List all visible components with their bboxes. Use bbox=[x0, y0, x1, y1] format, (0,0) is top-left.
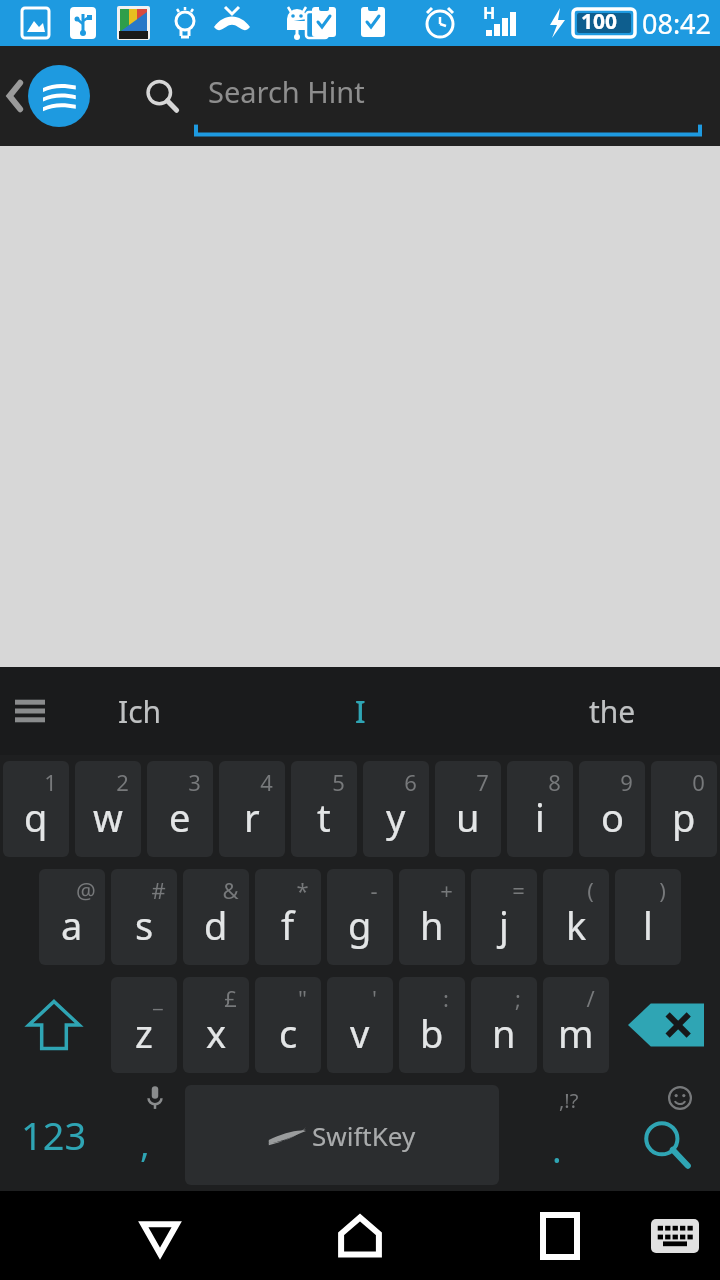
button[interactable]: Backspace bbox=[612, 971, 720, 1079]
button[interactable]: ) bbox=[615, 869, 681, 965]
staticText: a bbox=[61, 899, 83, 951]
staticText: I bbox=[355, 691, 366, 732]
staticText: SwiftKey bbox=[312, 1118, 416, 1153]
staticText: - bbox=[370, 875, 378, 905]
button[interactable]: Ich bbox=[40, 667, 240, 755]
staticText: 5 bbox=[332, 767, 345, 797]
button[interactable]: / bbox=[543, 977, 609, 1073]
button[interactable]: 2 bbox=[75, 761, 141, 857]
staticText: y bbox=[386, 791, 406, 843]
button[interactable]: Shift bbox=[0, 971, 108, 1079]
button[interactable]: : bbox=[399, 977, 465, 1073]
staticText: h bbox=[420, 899, 444, 951]
staticText: j bbox=[499, 899, 509, 951]
staticText: q bbox=[24, 791, 48, 843]
staticText: 123 bbox=[21, 1109, 87, 1161]
staticText: ) bbox=[659, 875, 666, 905]
staticText: u bbox=[456, 791, 480, 843]
button[interactable]: + bbox=[399, 869, 465, 965]
button[interactable]: 5 bbox=[291, 761, 357, 857]
staticText: v bbox=[350, 1007, 370, 1059]
button[interactable]: 7 bbox=[435, 761, 501, 857]
button[interactable]: @ bbox=[39, 869, 105, 965]
button[interactable]: 8 bbox=[507, 761, 573, 857]
staticText: b bbox=[420, 1007, 444, 1059]
button[interactable]: # bbox=[111, 869, 177, 965]
button[interactable]: ' bbox=[327, 977, 393, 1073]
staticText: e bbox=[169, 791, 191, 843]
staticText: & bbox=[222, 875, 239, 905]
staticText: 100 bbox=[581, 7, 618, 36]
staticText: 8 bbox=[548, 767, 561, 797]
button[interactable]: & bbox=[183, 869, 249, 965]
button[interactable]: £ bbox=[183, 977, 249, 1073]
staticText: 2 bbox=[116, 767, 129, 797]
staticText: Search Hint bbox=[208, 72, 365, 111]
button[interactable]: Search bbox=[612, 1079, 720, 1191]
staticText: 4 bbox=[260, 767, 273, 797]
staticText: s bbox=[135, 899, 154, 951]
staticText: ,!? bbox=[559, 1087, 579, 1114]
staticText: 1 bbox=[44, 767, 57, 797]
staticText: d bbox=[204, 899, 228, 951]
staticText: 0 bbox=[692, 767, 705, 797]
staticText: x bbox=[206, 1007, 227, 1059]
staticText: the bbox=[589, 691, 636, 732]
staticText: 7 bbox=[476, 767, 489, 797]
button[interactable]: 1 bbox=[3, 761, 69, 857]
button[interactable]: 9 bbox=[579, 761, 645, 857]
button[interactable]: 0 bbox=[651, 761, 717, 857]
button[interactable]: Switch keyboard bbox=[630, 1191, 720, 1280]
staticText: p bbox=[672, 791, 696, 843]
staticText: Ich bbox=[118, 691, 162, 732]
button[interactable]: = bbox=[471, 869, 537, 965]
button[interactable]: I bbox=[260, 667, 460, 755]
button[interactable]: * bbox=[255, 869, 321, 965]
button[interactable]: _ bbox=[111, 977, 177, 1073]
button[interactable]: 3 bbox=[147, 761, 213, 857]
button[interactable]: the bbox=[512, 667, 712, 755]
staticText: m bbox=[558, 1007, 594, 1059]
staticText: : bbox=[443, 983, 449, 1013]
staticText: i bbox=[535, 791, 545, 843]
button[interactable]: 6 bbox=[363, 761, 429, 857]
staticText: 9 bbox=[620, 767, 633, 797]
staticText: o bbox=[601, 791, 624, 843]
button[interactable]: 4 bbox=[219, 761, 285, 857]
button[interactable]: Back bbox=[110, 1191, 210, 1280]
staticText: f bbox=[281, 899, 295, 951]
staticText: # bbox=[151, 875, 166, 905]
staticText: * bbox=[296, 875, 309, 905]
staticText: k bbox=[566, 899, 587, 951]
button[interactable]: ( bbox=[543, 869, 609, 965]
button[interactable]: Recent apps bbox=[510, 1191, 610, 1280]
staticText: g bbox=[348, 899, 372, 951]
button[interactable]: ; bbox=[471, 977, 537, 1073]
button[interactable]: 123 bbox=[0, 1079, 108, 1191]
button[interactable]: Menu bbox=[0, 667, 60, 755]
button[interactable]: Period and symbols bbox=[502, 1079, 612, 1191]
staticText: _ bbox=[153, 983, 163, 1013]
button[interactable]: " bbox=[255, 977, 321, 1073]
staticText: ' bbox=[372, 983, 377, 1013]
staticText: n bbox=[492, 1007, 516, 1059]
staticText: ( bbox=[587, 875, 594, 905]
staticText: w bbox=[93, 791, 123, 843]
staticText: H bbox=[483, 2, 496, 24]
staticText: . bbox=[552, 1125, 562, 1174]
button[interactable]: Comma, voice input bbox=[108, 1079, 182, 1191]
button[interactable]: - bbox=[327, 869, 393, 965]
staticText: 3 bbox=[188, 767, 201, 797]
button[interactable]: Search bbox=[130, 64, 194, 128]
staticText: t bbox=[317, 791, 331, 843]
button[interactable]: Search Hint bbox=[194, 46, 702, 146]
button[interactable]: Home bbox=[305, 1191, 415, 1280]
staticText: 6 bbox=[404, 767, 417, 797]
staticText: = bbox=[512, 875, 525, 905]
staticText: + bbox=[440, 875, 453, 905]
button[interactable]: Space bbox=[185, 1085, 499, 1185]
staticText: £ bbox=[224, 983, 237, 1013]
staticText: 08:42 bbox=[642, 5, 712, 42]
staticText: l bbox=[643, 899, 653, 951]
button[interactable]: Navigate up bbox=[0, 46, 108, 146]
